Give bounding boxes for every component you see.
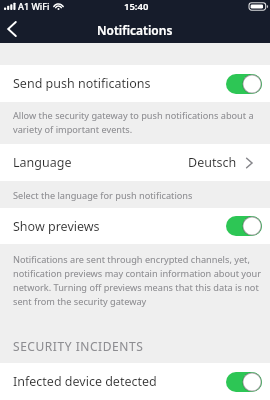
button[interactable]: Language	[0, 144, 270, 181]
staticText: Show previews	[13, 218, 100, 235]
button[interactable]: Toggle	[226, 74, 262, 94]
staticText: Allow the security gateway to push notif…	[13, 109, 262, 136]
button[interactable]: Back	[0, 18, 24, 42]
staticText: Notifications	[97, 22, 173, 38]
staticText: Send push notifications	[13, 75, 151, 92]
staticText: Language	[13, 154, 72, 171]
staticText: Infected device detected	[13, 373, 157, 390]
staticText: SECURITY INCIDENTS	[13, 338, 270, 354]
button[interactable]: Toggle	[226, 216, 262, 236]
staticText: Deutsch	[188, 154, 237, 171]
button[interactable]: Show previews	[0, 208, 270, 244]
staticText: Notifications are sent through encrypted…	[13, 253, 262, 308]
button[interactable]: Infected device detected	[0, 363, 270, 400]
button[interactable]: Toggle	[226, 372, 262, 392]
staticText: 15:40	[124, 0, 149, 12]
staticText: Select the language for push notificatio…	[13, 189, 262, 202]
button[interactable]: Send push notifications	[0, 65, 270, 102]
staticText: A1 WiFi	[18, 0, 50, 12]
